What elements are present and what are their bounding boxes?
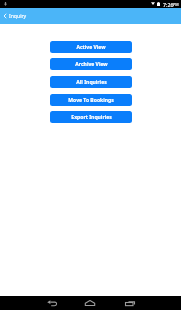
staticText: Inquiry bbox=[9, 13, 27, 20]
staticText: Archive View bbox=[75, 61, 108, 68]
staticText: All Inquiries bbox=[76, 79, 107, 86]
button[interactable]: Move To Bookings bbox=[50, 94, 132, 106]
button[interactable]: Back bbox=[42, 298, 62, 308]
staticText: 7:26 bbox=[163, 1, 174, 8]
button[interactable]: Back bbox=[0, 8, 8, 24]
button[interactable]: Recent apps bbox=[120, 298, 140, 308]
button[interactable]: Export Inquiries bbox=[50, 111, 132, 123]
staticText: PM bbox=[173, 2, 179, 7]
button[interactable]: All Inquiries bbox=[50, 76, 132, 88]
button[interactable]: Archive View bbox=[50, 58, 132, 70]
staticText: Move To Bookings bbox=[68, 97, 114, 104]
staticText: Export Inquiries bbox=[71, 114, 112, 121]
button[interactable]: Active View bbox=[50, 41, 132, 53]
button[interactable]: Home bbox=[80, 298, 100, 308]
staticText: Active View bbox=[76, 44, 106, 51]
